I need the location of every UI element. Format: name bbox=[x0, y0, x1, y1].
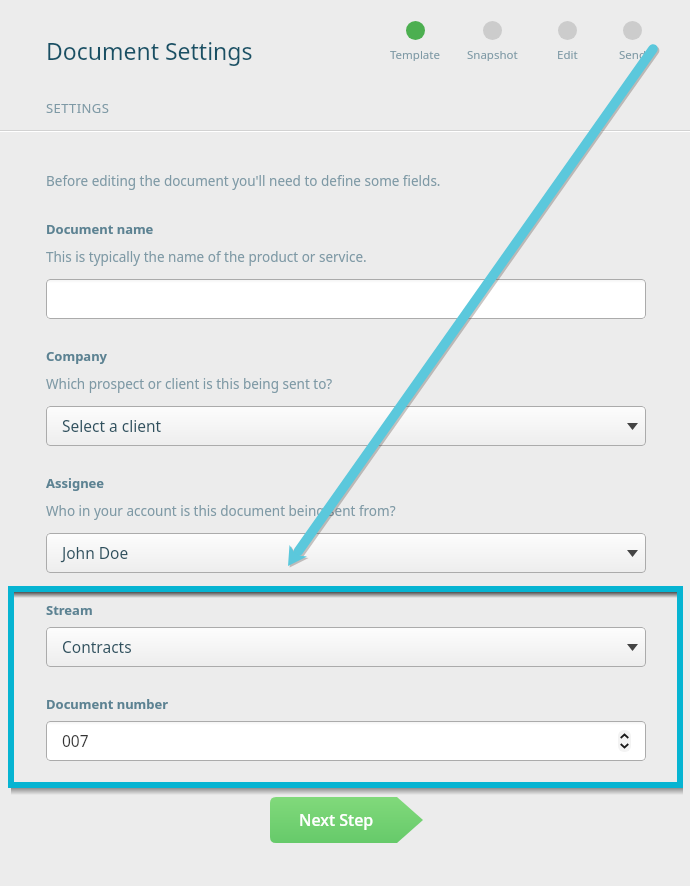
button[interactable]: Edit bbox=[527, 21, 607, 61]
button[interactable]: Select a client bbox=[46, 406, 646, 446]
button[interactable]: Send bbox=[592, 21, 672, 61]
button[interactable]: Increment or decrement bbox=[618, 730, 631, 752]
staticText: 007 bbox=[62, 730, 89, 751]
staticText: John Doe bbox=[62, 542, 129, 563]
staticText: Edit bbox=[557, 47, 578, 61]
staticText: This is typically the name of the produc… bbox=[46, 248, 367, 266]
button[interactable]: Next Step bbox=[270, 797, 423, 843]
staticText: Assignee bbox=[46, 474, 105, 492]
button[interactable]: Snapshot bbox=[452, 21, 532, 61]
staticText: Document name bbox=[46, 220, 154, 238]
button[interactable]: Contracts bbox=[46, 627, 646, 667]
button[interactable] bbox=[46, 279, 646, 319]
staticText: Send bbox=[619, 47, 646, 61]
button[interactable]: 007 bbox=[46, 721, 646, 761]
staticText: Before editing the document you'll need … bbox=[46, 172, 441, 190]
button[interactable]: Template bbox=[375, 21, 455, 61]
staticText: SETTINGS bbox=[46, 99, 110, 117]
staticText: Document number bbox=[46, 695, 169, 713]
staticText: Stream bbox=[46, 601, 93, 619]
staticText: Template bbox=[390, 47, 440, 61]
staticText: Who in your account is this document bei… bbox=[46, 502, 396, 520]
staticText: Company bbox=[46, 347, 108, 365]
staticText: Snapshot bbox=[467, 47, 518, 61]
staticText: Contracts bbox=[62, 636, 132, 657]
staticText: Document Settings bbox=[46, 35, 253, 66]
staticText: Which prospect or client is this being s… bbox=[46, 375, 333, 393]
button[interactable]: John Doe bbox=[46, 533, 646, 573]
staticText: Next Step bbox=[299, 809, 374, 831]
staticText: Select a client bbox=[62, 415, 162, 436]
